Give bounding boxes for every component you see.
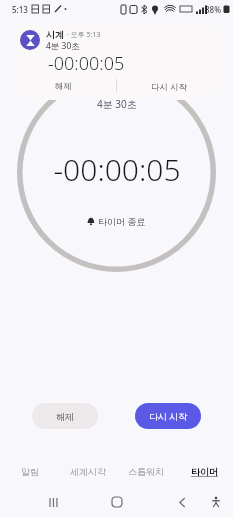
staticText: -00:00:05 (53, 149, 181, 190)
staticText: -00:00:05 (48, 51, 125, 76)
staticText: 4분 30초 (46, 40, 80, 52)
button[interactable]: 타이머 (175, 460, 233, 482)
staticText: 스톱워치 (128, 466, 164, 477)
staticText: 다시 시작 (151, 81, 188, 93)
staticText: 4분 30초 (97, 97, 137, 111)
staticText: 타이머 종료 (98, 215, 146, 227)
staticText: 타이머 (191, 466, 218, 477)
staticText: 다시 시작 (149, 410, 188, 422)
button[interactable]: Accessibility (204, 490, 228, 514)
button[interactable]: 세계시각 (59, 460, 117, 482)
staticText: 세계시각 (70, 466, 106, 477)
staticText: 시계 (46, 29, 64, 40)
staticText: 알림 (21, 466, 39, 477)
button[interactable]: Recent apps (40, 489, 66, 515)
button[interactable]: Back (169, 489, 195, 515)
button[interactable]: 다시 시작 (135, 403, 201, 429)
staticText: 해제 (55, 81, 72, 92)
button[interactable]: Home (104, 489, 130, 515)
staticText: 5:13 (12, 4, 28, 15)
button[interactable]: 해제 (10, 78, 116, 95)
button[interactable]: 알림 (0, 460, 59, 482)
button[interactable]: 스톱워치 (117, 460, 175, 482)
staticText: 해제 (56, 411, 74, 422)
staticText: 88% (205, 4, 221, 15)
button[interactable]: 해제 (32, 403, 98, 429)
staticText: · 오후 5:13 (67, 30, 101, 40)
button[interactable]: 시계 (10, 22, 223, 100)
button[interactable]: 다시 시작 (116, 78, 223, 95)
